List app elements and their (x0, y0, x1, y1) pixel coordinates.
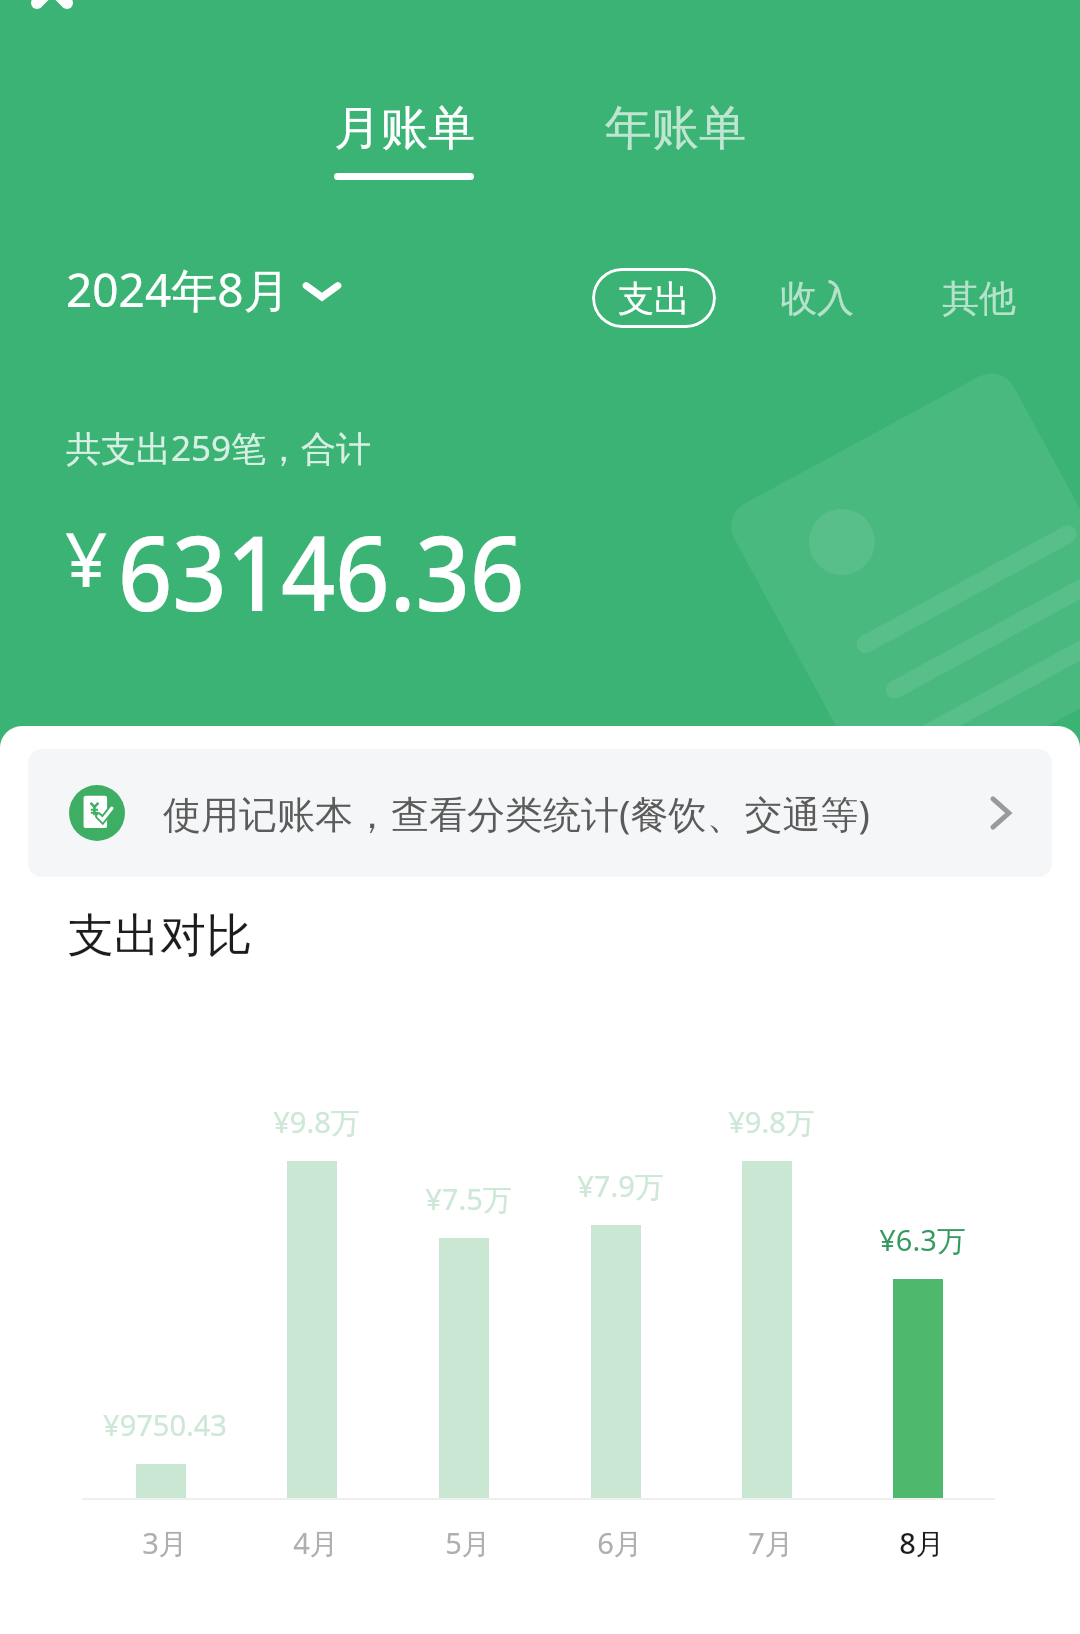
staticText: ¥7.9万 (577, 1166, 664, 1206)
button[interactable]: 年账单 (581, 99, 769, 161)
staticText: ¥7.5万 (425, 1179, 512, 1219)
staticText: ¥9.8万 (728, 1102, 815, 1142)
button[interactable]: 收入 (762, 268, 872, 328)
button[interactable]: 月账单 (310, 99, 498, 183)
staticText: 收入 (780, 275, 854, 322)
staticText: 4月 (293, 1523, 339, 1563)
staticText: 使用记账本，查看分类统计(餐饮、交通等) (163, 787, 870, 839)
button[interactable]: 其他 (924, 268, 1034, 328)
staticText: 共支出259笔，合计 (66, 424, 372, 472)
staticText: 3月 (142, 1523, 188, 1563)
staticText: 7月 (748, 1523, 794, 1563)
button[interactable]: 2024年8月 (62, 258, 344, 321)
button[interactable]: Close (0, 0, 140, 76)
staticText: 支出对比 (68, 907, 252, 965)
staticText: 63146.36 (118, 500, 525, 641)
staticText: ¥6.3万 (879, 1220, 966, 1260)
staticText: 8月 (899, 1523, 945, 1563)
staticText: ¥9.8万 (273, 1102, 360, 1142)
staticText: 6月 (597, 1523, 643, 1563)
staticText: 2024年8月 (66, 258, 290, 321)
staticText: ¥ (65, 508, 108, 609)
staticText: 5月 (445, 1523, 491, 1563)
staticText: 其他 (942, 275, 1016, 322)
staticText: 月账单 (334, 99, 475, 158)
staticText: ¥9750.43 (103, 1405, 227, 1444)
button[interactable]: 支出 (592, 268, 716, 328)
staticText: 支出 (618, 276, 690, 321)
staticText: 年账单 (605, 99, 746, 158)
button[interactable]: 使用记账本，查看分类统计(餐饮、交通等) (28, 749, 1052, 877)
